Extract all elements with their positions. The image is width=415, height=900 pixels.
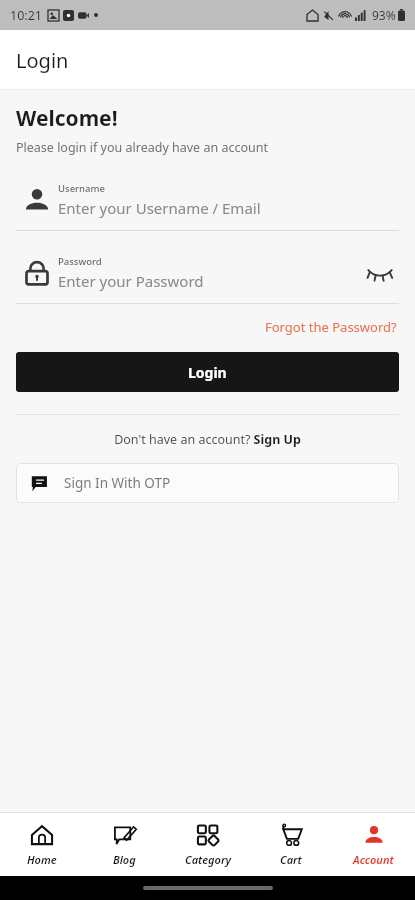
staticText: Home xyxy=(27,852,57,867)
staticText: Enter your Password xyxy=(58,271,204,291)
button[interactable]: Username xyxy=(16,182,399,231)
staticText: Sign In With OTP xyxy=(64,474,171,492)
staticText: 93% xyxy=(372,7,396,23)
staticText: Don't have an account? Sign Up xyxy=(114,431,301,448)
staticText: 10:21 xyxy=(10,7,42,24)
button[interactable]: Show password xyxy=(361,265,399,281)
button[interactable]: Sign In With OTP xyxy=(16,463,399,503)
button[interactable]: Cart xyxy=(249,813,332,876)
staticText: Please login if you already have an acco… xyxy=(16,139,268,156)
button[interactable]: Login xyxy=(16,352,399,392)
button[interactable]: Don't have an account? Sign Up xyxy=(110,429,305,450)
staticText: Blog xyxy=(113,852,136,867)
button[interactable]: Account xyxy=(332,813,415,876)
staticText: Password xyxy=(58,255,102,268)
button[interactable]: Password xyxy=(16,255,399,304)
staticText: Category xyxy=(185,852,231,867)
staticText: Login xyxy=(16,47,69,74)
button[interactable]: Blog xyxy=(83,813,166,876)
staticText: Forgot the Password? xyxy=(265,318,397,336)
staticText: Enter your Username / Email xyxy=(58,198,261,218)
staticText: Username xyxy=(58,182,105,195)
button[interactable]: Home xyxy=(0,813,83,876)
button[interactable]: Forgot the Password? xyxy=(263,316,399,338)
staticText: Welcome! xyxy=(16,104,118,133)
staticText: Cart xyxy=(280,852,302,867)
staticText: Login xyxy=(188,363,227,382)
button[interactable]: Category xyxy=(166,813,249,876)
staticText: Account xyxy=(353,852,394,867)
